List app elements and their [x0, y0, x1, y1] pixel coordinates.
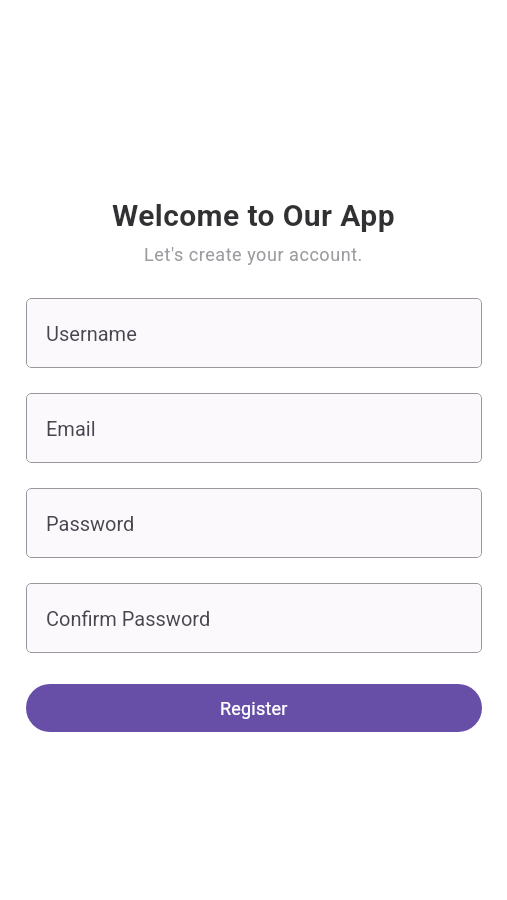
staticText: Password — [46, 512, 135, 535]
button[interactable]: Password — [26, 488, 482, 558]
staticText: Register — [220, 698, 288, 719]
staticText: Username — [46, 322, 137, 345]
button[interactable]: Confirm Password — [26, 583, 482, 653]
staticText: Let's create your account. — [0, 244, 507, 265]
button[interactable]: Register — [26, 684, 482, 732]
staticText: Email — [46, 417, 96, 440]
staticText: Welcome to Our App — [0, 198, 507, 233]
button[interactable]: Email — [26, 393, 482, 463]
staticText: Confirm Password — [46, 607, 211, 630]
button[interactable]: Username — [26, 298, 482, 368]
